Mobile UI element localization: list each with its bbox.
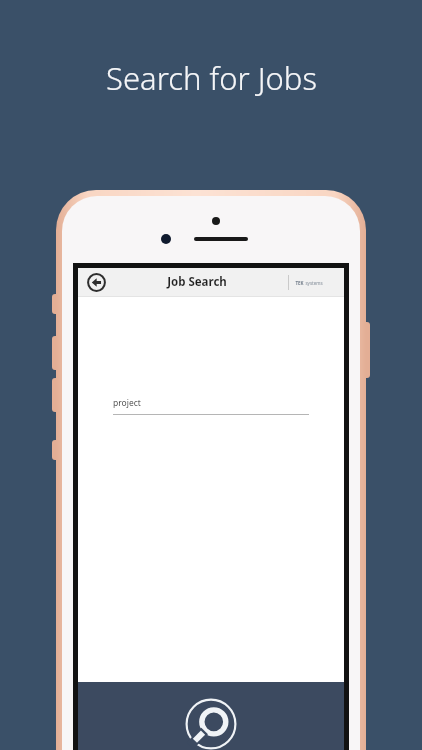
button[interactable]: Back [87,273,106,292]
staticText: TEK [295,280,304,286]
staticText: systems [305,280,323,286]
staticText: project [113,397,141,409]
button[interactable]: project [113,397,309,415]
staticText: Search for Jobs [106,57,317,99]
button[interactable]: Job Search [78,682,344,750]
staticText: Job Search [167,274,227,290]
